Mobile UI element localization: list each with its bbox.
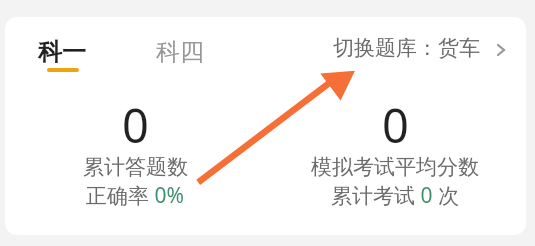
button[interactable]: 切换题库：货车	[325, 30, 517, 66]
staticText: 科一	[38, 37, 86, 67]
staticText: 累计考试 0 次	[331, 181, 459, 207]
button[interactable]: 0	[35, 90, 235, 210]
staticText: 模拟考试平均分数	[311, 154, 479, 180]
button[interactable]: 科一	[28, 28, 96, 78]
staticText: 0	[382, 93, 409, 157]
staticText: 0	[122, 93, 149, 157]
button[interactable]: 科四	[146, 28, 214, 78]
staticText: 累计答题数	[83, 154, 188, 180]
staticText: 切换题库：货车	[333, 35, 480, 61]
button[interactable]: 0	[295, 90, 495, 210]
other: Switch question bank	[497, 44, 505, 56]
staticText: 正确率 0%	[86, 181, 184, 207]
staticText: 科四	[156, 37, 204, 67]
